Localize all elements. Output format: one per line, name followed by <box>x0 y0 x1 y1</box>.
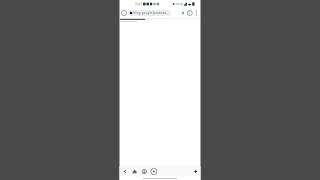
button[interactable]: Assistant <box>192 167 200 176</box>
button[interactable]: Account <box>139 167 149 176</box>
button[interactable]: More options <box>193 8 199 17</box>
staticText: 9:41 <box>135 1 142 7</box>
button[interactable]: Site information <box>120 8 128 17</box>
button[interactable]: Tabs <box>186 8 193 17</box>
staticText: VoLTE <box>175 2 182 6</box>
button[interactable]: Back <box>120 167 130 176</box>
button[interactable]: blog.google/products/news <box>128 10 171 16</box>
staticText: 3 <box>189 11 191 15</box>
staticText: i <box>124 11 125 15</box>
button[interactable]: Home <box>130 167 139 176</box>
button[interactable]: Google Lens <box>149 167 159 176</box>
staticText: blog.google/products/news <box>133 11 169 15</box>
button[interactable]: Forward <box>179 8 186 17</box>
